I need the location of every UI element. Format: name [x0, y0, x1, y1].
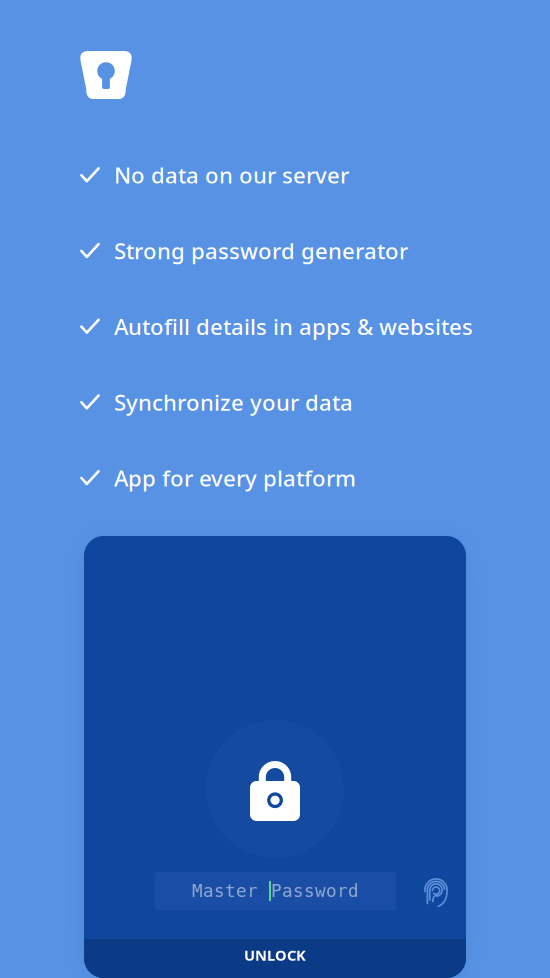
staticText: Synchronize your data — [114, 387, 353, 417]
staticText: No data on our server — [114, 160, 349, 190]
staticText: UNLOCK — [244, 945, 306, 965]
staticText: Autofill details in apps & websites — [114, 311, 473, 341]
staticText: Password — [271, 881, 359, 901]
button[interactable]: Master — [155, 872, 396, 910]
staticText: App for every platform — [114, 463, 356, 493]
button[interactable]: Unlock with fingerprint — [424, 872, 448, 910]
staticText: Master — [192, 881, 258, 901]
button[interactable]: UNLOCK — [84, 939, 466, 978]
staticText: Strong password generator — [114, 236, 408, 266]
